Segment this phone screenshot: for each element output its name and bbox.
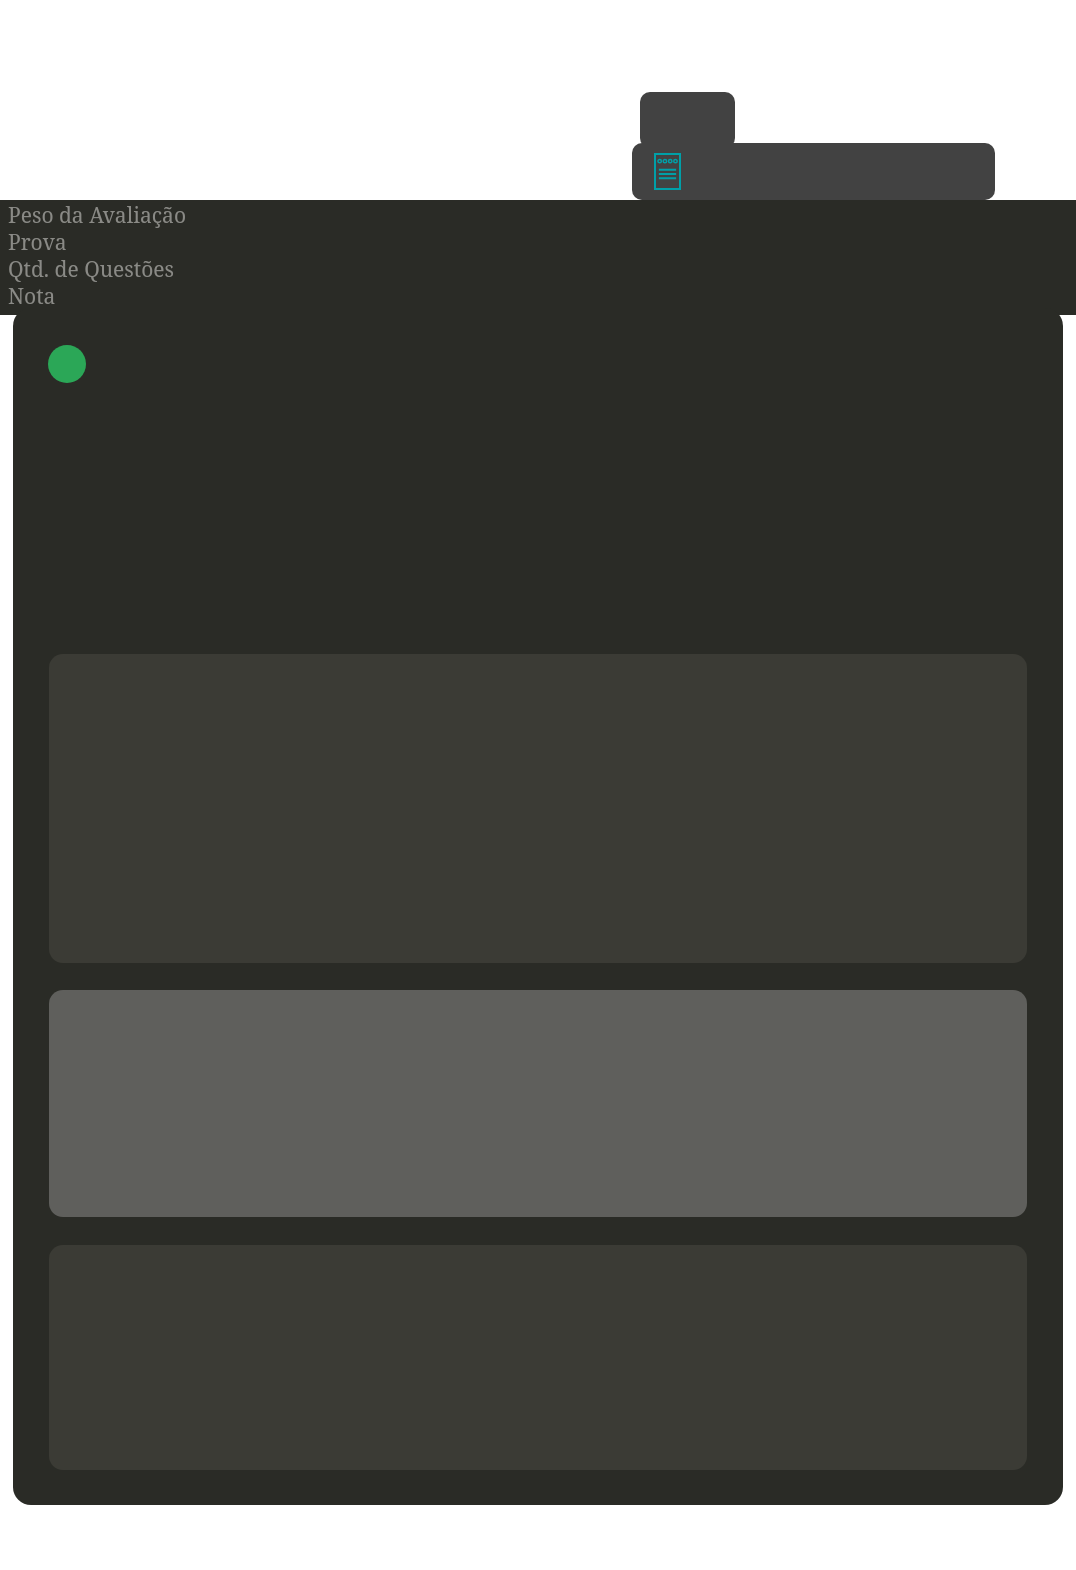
staticText: Qtd. de Questões: [8, 255, 175, 282]
staticText: Prova: [8, 228, 67, 255]
button[interactable]: Status: [48, 345, 86, 383]
staticText: Nota: [8, 282, 56, 309]
button[interactable]: Tab: [640, 92, 735, 148]
button[interactable]: Questions list: [632, 143, 995, 200]
staticText: Peso da Avaliação: [8, 201, 186, 228]
